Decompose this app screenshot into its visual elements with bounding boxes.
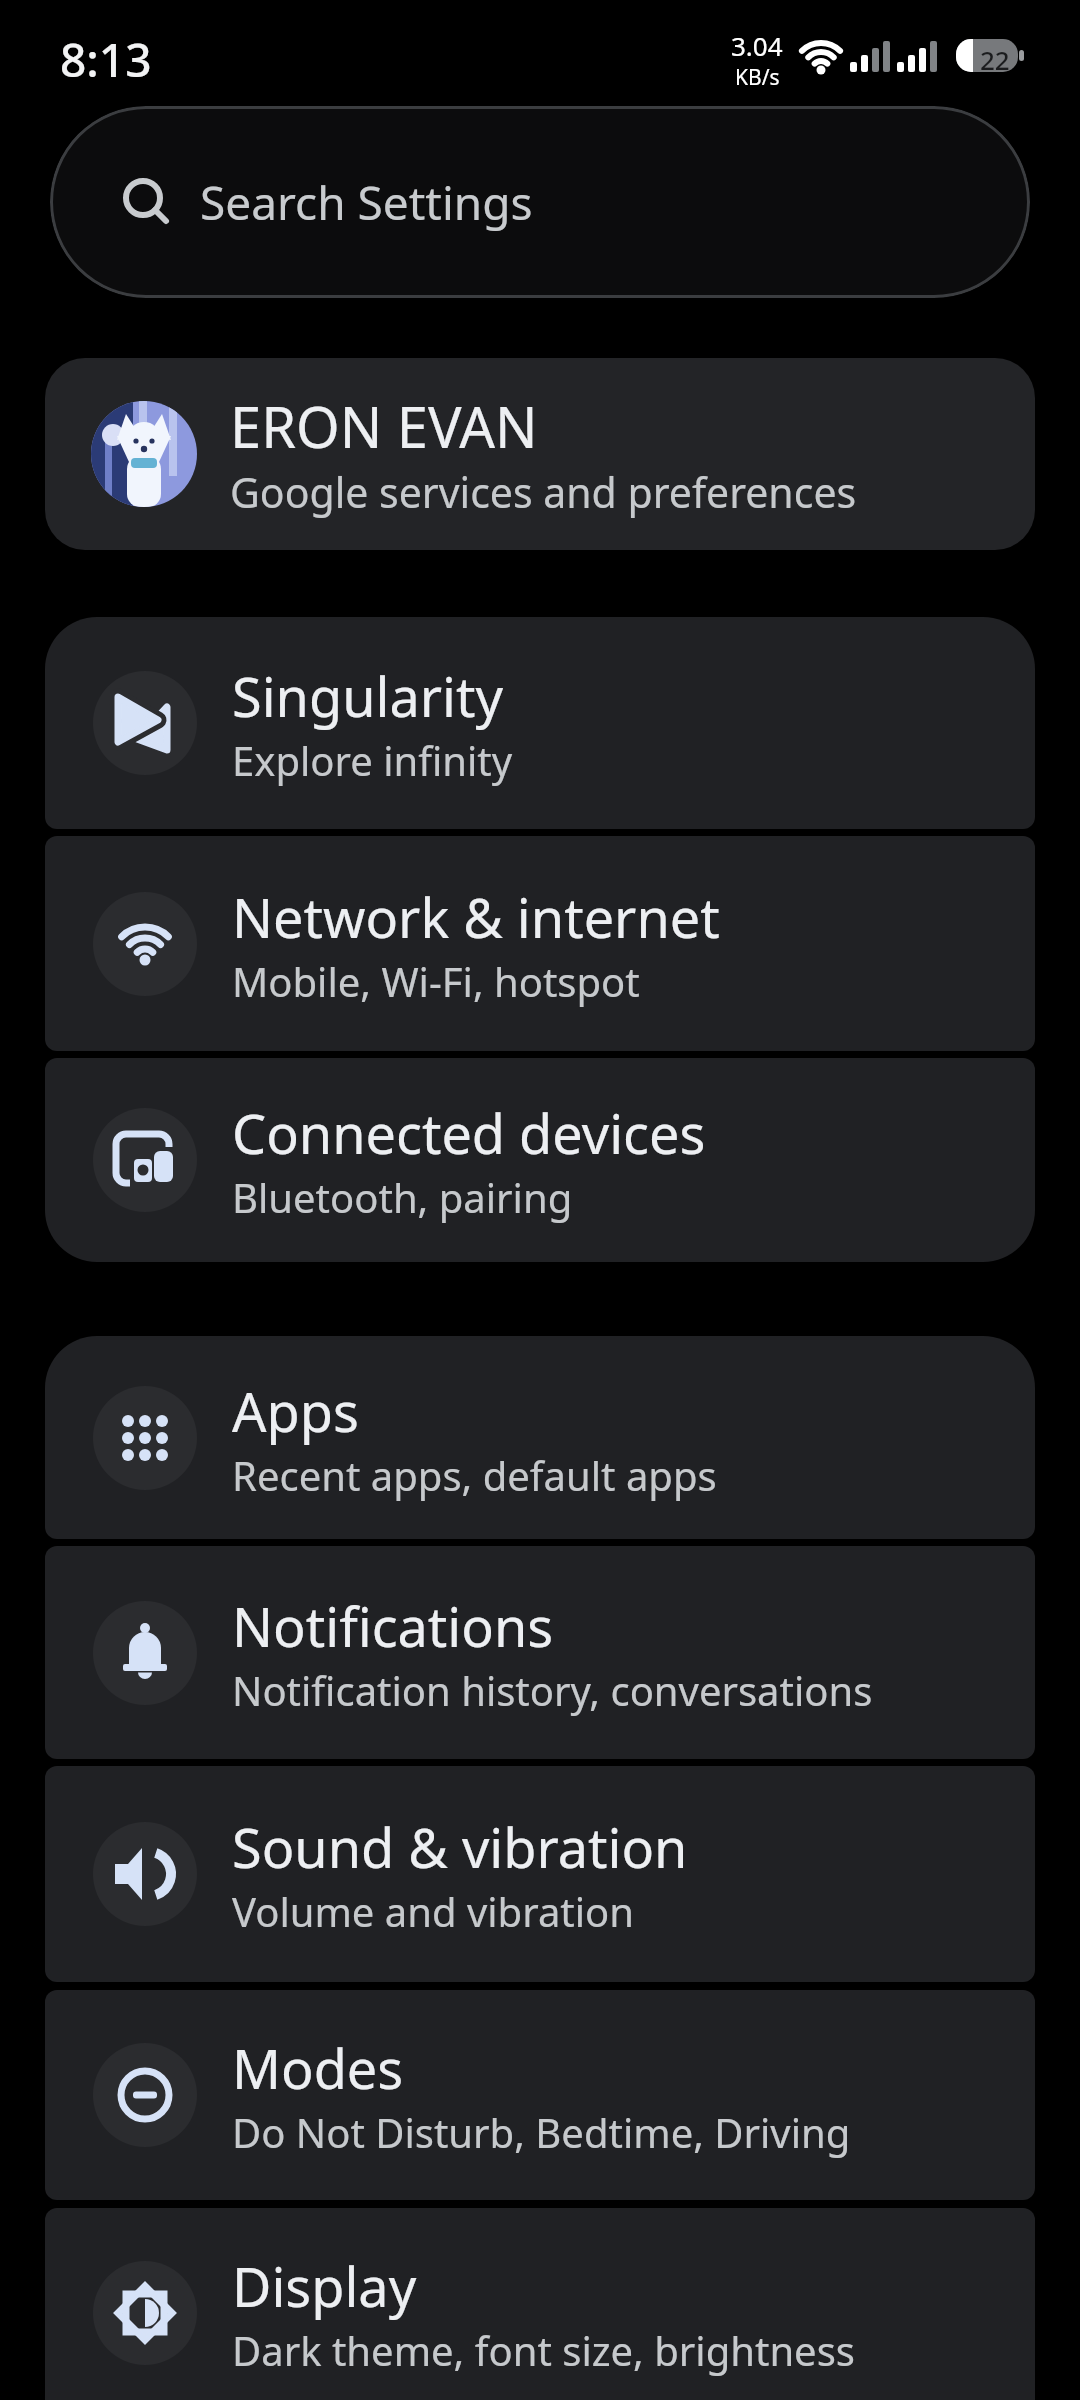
staticText: Recent apps, default apps xyxy=(232,1448,717,1502)
staticText: Notification history, conversations xyxy=(232,1663,873,1717)
staticText: Google services and preferences xyxy=(230,464,857,520)
staticText: 8:13 xyxy=(60,28,152,91)
button[interactable]: Apps xyxy=(45,1336,1035,1539)
button[interactable]: Connected devices xyxy=(45,1058,1035,1262)
staticText: Connected devices xyxy=(232,1096,706,1170)
staticText: Explore infinity xyxy=(232,733,513,787)
staticText: 3.04 xyxy=(731,28,783,63)
button[interactable]: ERON EVAN xyxy=(45,358,1035,550)
button[interactable]: Sound & vibration xyxy=(45,1766,1035,1982)
staticText: Volume and vibration xyxy=(232,1884,635,1938)
staticText: Modes xyxy=(232,2031,404,2105)
staticText: Singularity xyxy=(232,659,504,733)
staticText: KB/s xyxy=(735,63,780,92)
staticText: Apps xyxy=(232,1374,359,1448)
button[interactable]: Network & internet xyxy=(45,836,1035,1051)
staticText: Do Not Disturb, Bedtime, Driving xyxy=(232,2105,851,2159)
staticText: 22 xyxy=(980,42,1010,75)
button[interactable]: Display xyxy=(45,2208,1035,2400)
staticText: Notifications xyxy=(232,1589,554,1663)
staticText: Bluetooth, pairing xyxy=(232,1170,573,1224)
button[interactable]: Singularity xyxy=(45,617,1035,829)
button[interactable]: Search Settings xyxy=(50,106,1030,298)
button[interactable]: Notifications xyxy=(45,1546,1035,1759)
staticText: Mobile, Wi-Fi, hotspot xyxy=(232,954,640,1008)
staticText: Sound & vibration xyxy=(232,1810,688,1884)
staticText: Display xyxy=(232,2249,417,2323)
staticText: ERON EVAN xyxy=(230,388,538,464)
staticText: Search Settings xyxy=(200,171,533,234)
staticText: Dark theme, font size, brightness xyxy=(232,2323,855,2377)
button[interactable]: Modes xyxy=(45,1990,1035,2200)
staticText: Network & internet xyxy=(232,880,720,954)
